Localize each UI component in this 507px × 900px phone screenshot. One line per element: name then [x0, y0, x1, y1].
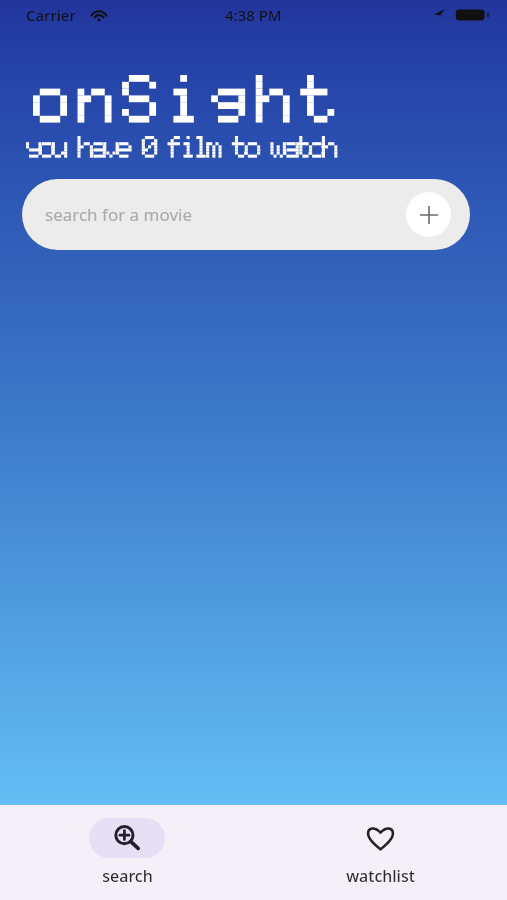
staticText: Carrier — [26, 5, 76, 25]
staticText: 4:38 PM — [225, 5, 282, 25]
staticText: search for a movie — [45, 203, 193, 226]
button[interactable]: Add movie — [406, 192, 451, 237]
button[interactable]: search for a movie — [22, 179, 470, 250]
staticText: watchlist — [346, 865, 415, 887]
button[interactable]: search — [89, 805, 165, 887]
button[interactable]: watchlist — [342, 805, 418, 887]
staticText: search — [102, 865, 153, 887]
